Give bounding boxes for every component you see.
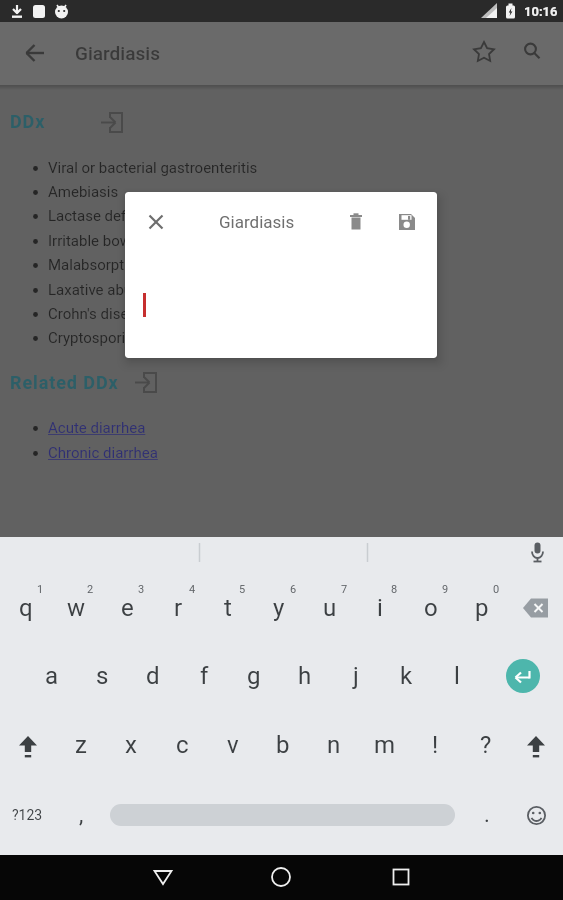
button[interactable]: e: [102, 576, 152, 640]
staticText: g: [247, 662, 261, 690]
staticText: k: [400, 662, 413, 690]
button[interactable]: [347, 212, 365, 232]
button[interactable]: f: [179, 644, 229, 708]
staticText: 6: [290, 583, 297, 596]
button[interactable]: [20, 38, 50, 68]
staticText: h: [298, 662, 312, 690]
staticText: y: [273, 594, 285, 622]
staticText: 0: [493, 583, 500, 596]
button[interactable]: ?123: [5, 783, 50, 847]
staticText: c: [176, 731, 189, 759]
staticText: d: [146, 662, 160, 690]
staticText: ?123: [12, 807, 43, 823]
staticText: Cryptosporidiosis: [48, 329, 166, 347]
staticText: n: [327, 731, 341, 759]
button[interactable]: h: [280, 644, 330, 708]
button[interactable]: [0, 537, 563, 855]
button[interactable]: o: [406, 576, 456, 640]
button[interactable]: [388, 864, 414, 890]
button[interactable]: [150, 864, 176, 890]
button[interactable]: p: [457, 576, 507, 640]
button[interactable]: g: [229, 644, 279, 708]
staticText: Acute diarrhea: [48, 419, 146, 437]
staticText: f: [200, 662, 209, 690]
staticText: !: [432, 731, 439, 759]
staticText: Related DDx: [10, 372, 119, 393]
staticText: Irritable bowel syndrome: [48, 232, 213, 250]
button[interactable]: v: [208, 713, 258, 777]
staticText: e: [121, 594, 134, 622]
staticText: 1: [37, 583, 44, 596]
button[interactable]: r: [153, 576, 203, 640]
staticText: 5: [239, 583, 246, 596]
button[interactable]: [519, 594, 551, 622]
button[interactable]: t: [203, 576, 253, 640]
button[interactable]: l: [432, 644, 482, 708]
staticText: j: [353, 662, 359, 690]
staticText: Viral or bacterial gastroenteritis: [48, 159, 258, 177]
staticText: l: [454, 662, 460, 690]
staticText: Crohn's disease: [48, 305, 153, 323]
staticText: Malabsorption: [48, 256, 145, 274]
button[interactable]: Related DDx: [10, 369, 140, 395]
button[interactable]: Chronic diarrhea: [48, 442, 248, 464]
button[interactable]: c: [157, 713, 207, 777]
button[interactable]: y: [254, 576, 304, 640]
staticText: Lactase deficiency: [48, 207, 172, 225]
button[interactable]: d: [128, 644, 178, 708]
staticText: 2: [87, 583, 94, 596]
button[interactable]: [470, 38, 498, 66]
button[interactable]: [147, 213, 165, 231]
staticText: Chronic diarrhea: [48, 444, 158, 462]
button[interactable]: n: [309, 713, 359, 777]
button[interactable]: k: [381, 644, 431, 708]
staticText: u: [323, 594, 337, 622]
button[interactable]: [527, 541, 548, 564]
staticText: Giardiasis: [219, 212, 295, 232]
button[interactable]: u: [305, 576, 355, 640]
button[interactable]: m: [360, 713, 410, 777]
staticText: 9: [442, 583, 449, 596]
button[interactable]: [506, 659, 540, 693]
button[interactable]: ?: [461, 713, 511, 777]
staticText: t: [224, 594, 232, 622]
staticText: 10:16: [524, 4, 558, 19]
staticText: x: [125, 731, 137, 759]
button[interactable]: ,: [66, 783, 96, 847]
button[interactable]: w: [51, 576, 101, 640]
button[interactable]: [398, 213, 416, 231]
staticText: Amebiasis: [48, 183, 119, 201]
button[interactable]: b: [258, 713, 308, 777]
staticText: q: [19, 594, 33, 622]
staticText: Giardiasis: [75, 42, 160, 64]
staticText: w: [67, 594, 86, 622]
staticText: 3: [138, 583, 145, 596]
button[interactable]: a: [27, 644, 77, 708]
staticText: o: [424, 594, 438, 622]
button[interactable]: s: [77, 644, 127, 708]
staticText: p: [475, 594, 489, 622]
staticText: b: [276, 731, 290, 759]
staticText: a: [45, 662, 59, 690]
button[interactable]: q: [1, 576, 51, 640]
staticText: 7: [341, 583, 348, 596]
button[interactable]: [526, 805, 547, 826]
button[interactable]: .: [472, 783, 502, 847]
button[interactable]: !: [410, 713, 460, 777]
staticText: Laxative abuse: [48, 281, 148, 299]
button[interactable]: j: [331, 644, 381, 708]
button[interactable]: [519, 38, 547, 66]
button[interactable]: x: [106, 713, 156, 777]
button[interactable]: [268, 864, 294, 890]
staticText: DDx: [10, 111, 46, 132]
button[interactable]: i: [355, 576, 405, 640]
staticText: v: [227, 731, 239, 759]
button[interactable]: z: [56, 713, 106, 777]
button[interactable]: [19, 736, 37, 758]
staticText: i: [377, 594, 383, 622]
staticText: ?: [480, 731, 492, 759]
button[interactable]: DDx: [10, 108, 100, 134]
button[interactable]: Acute diarrhea: [48, 417, 248, 439]
button[interactable]: [527, 736, 545, 758]
